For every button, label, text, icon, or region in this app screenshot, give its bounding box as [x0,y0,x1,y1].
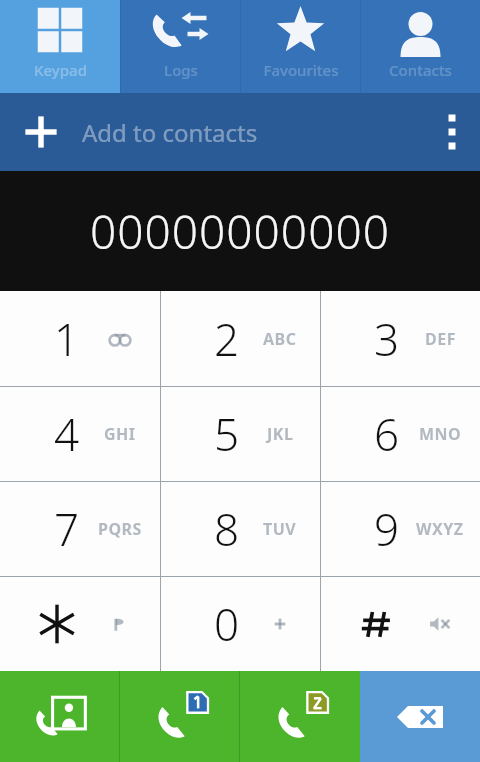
button[interactable]: 3 [321,291,480,386]
button[interactable]: Keypad [0,0,120,93]
button[interactable]: 9 [321,482,480,576]
staticText: 6 [374,404,400,464]
staticText: Keypad [34,60,87,80]
staticText: 2 [214,309,240,369]
button[interactable]: Backspace [360,671,480,762]
staticText: 9 [374,499,400,559]
button[interactable]: Call with SIM 2 [240,671,360,762]
button[interactable]: Favourites [241,0,360,93]
staticText: ABC [263,328,297,350]
staticText: 3 [374,309,400,369]
staticText: 5 [214,404,240,464]
button[interactable]: 0 [161,577,320,671]
staticText: Contacts [389,60,452,80]
button[interactable]: Add to contacts [0,93,480,171]
staticText: PQRS [98,518,142,540]
staticText: JKL [267,423,294,445]
button[interactable]: Call with SIM 1 [120,671,239,762]
staticText: Logs [164,60,198,80]
staticText: 1 [54,309,80,369]
button[interactable]: 7 [0,482,160,576]
button[interactable]: 4 [0,387,160,481]
staticText: 8 [214,499,240,559]
button[interactable]: 2 [161,291,320,386]
button[interactable]: Video call [0,671,119,762]
staticText: Add to contacts [82,116,258,149]
staticText: 0 [214,594,240,654]
staticText: MNO [419,423,462,445]
button[interactable]: Logs [121,0,240,93]
button[interactable]: More options [424,93,480,171]
staticText: 7 [54,499,80,559]
staticText: WXYZ [416,518,464,540]
button[interactable]: 6 [321,387,480,481]
button[interactable]: 5 [161,387,320,481]
staticText: 4 [54,404,80,464]
button[interactable] [0,577,160,671]
button[interactable]: Contacts [361,0,480,93]
staticText: 00000000000 [90,200,390,263]
staticText: TUV [263,518,297,540]
staticText: Favourites [263,60,339,80]
button[interactable] [321,577,480,671]
staticText: GHI [104,423,136,445]
button[interactable]: 1 [0,291,160,386]
staticText: DEF [425,328,456,350]
button[interactable]: 8 [161,482,320,576]
